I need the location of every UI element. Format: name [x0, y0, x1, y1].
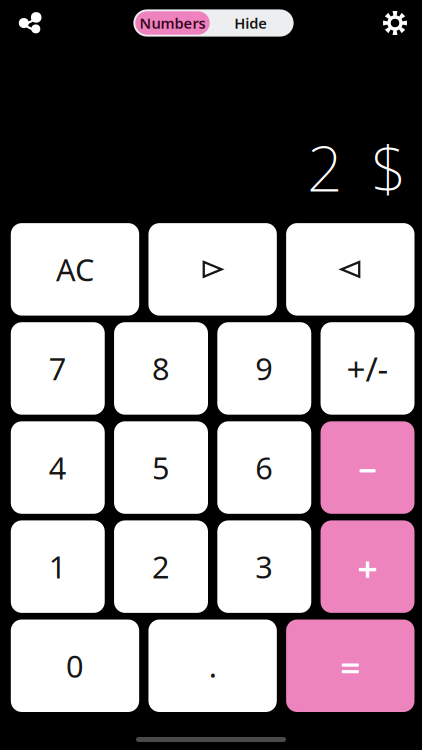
- staticText: 0: [66, 645, 84, 686]
- staticText: 4: [49, 447, 67, 488]
- staticText: .: [209, 645, 217, 686]
- button[interactable]: Settings: [378, 0, 412, 46]
- staticText: 3: [255, 546, 273, 587]
- button[interactable]: 4: [11, 421, 105, 514]
- button[interactable]: 5: [114, 421, 208, 514]
- staticText: Hide: [234, 13, 267, 33]
- button[interactable]: AC: [11, 223, 139, 316]
- button[interactable]: 1: [11, 520, 105, 613]
- button[interactable]: Numbers: [135, 11, 210, 35]
- button[interactable]: 6: [217, 421, 311, 514]
- button[interactable]: 0: [11, 619, 139, 712]
- staticText: Numbers: [139, 13, 205, 33]
- staticText: 5: [152, 447, 170, 488]
- staticText: 6: [255, 447, 273, 488]
- button[interactable]: 8: [114, 322, 208, 415]
- button[interactable]: Next: [148, 223, 277, 316]
- button[interactable]: +/-: [321, 322, 415, 415]
- staticText: 7: [49, 348, 67, 389]
- button[interactable]: Back: [286, 223, 414, 316]
- staticText: 1: [49, 546, 67, 587]
- button[interactable]: Share: [11, 2, 49, 44]
- staticText: +/-: [346, 346, 388, 391]
- staticText: AC: [56, 249, 94, 290]
- button[interactable]: 2: [114, 520, 208, 613]
- staticText: 2: [307, 125, 343, 209]
- staticText: $: [371, 125, 407, 209]
- staticText: 2: [152, 546, 170, 587]
- button[interactable]: Plus: [321, 520, 415, 613]
- button[interactable]: .: [148, 619, 277, 712]
- button[interactable]: 9: [217, 322, 311, 415]
- staticText: 9: [255, 348, 273, 389]
- button[interactable]: Equals: [286, 619, 414, 712]
- staticText: 8: [152, 348, 170, 389]
- button[interactable]: 7: [11, 322, 105, 415]
- button[interactable]: 3: [217, 520, 311, 613]
- button[interactable]: Minus: [321, 421, 415, 514]
- button[interactable]: Hide: [210, 11, 292, 35]
